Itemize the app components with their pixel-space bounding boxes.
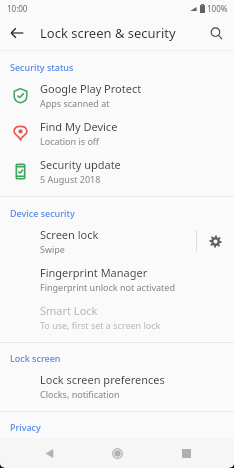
staticText: Find My Device [40, 119, 118, 134]
button[interactable]: Smart Lock [0, 298, 234, 336]
staticText: Lock screen [10, 352, 61, 364]
staticText: 5 August 2018 [40, 173, 101, 185]
staticText: 100% [207, 3, 228, 14]
button[interactable]: Back [29, 438, 69, 468]
button[interactable]: Search [203, 20, 229, 46]
staticText: Apps scanned at [40, 97, 110, 109]
staticText: Location is off [40, 135, 100, 147]
button[interactable]: Recent apps [166, 438, 206, 468]
staticText: Swipe [40, 243, 65, 255]
button[interactable]: Lock screen preferences [0, 367, 234, 405]
button[interactable]: Google Play Protect [0, 76, 234, 114]
staticText: Smart Lock [40, 303, 98, 318]
staticText: Fingerprint Manager [40, 265, 148, 280]
staticText: Lock screen & security [40, 24, 176, 42]
staticText: Security status [10, 61, 74, 73]
button[interactable]: Navigate up [4, 20, 30, 46]
button[interactable]: Screen lock settings [197, 222, 234, 260]
button[interactable]: Find My Device [0, 114, 234, 152]
button[interactable]: Fingerprint Manager [0, 260, 234, 298]
staticText: Security update [40, 157, 121, 172]
staticText: 10:00 [7, 3, 28, 14]
staticText: To use, first set a screen lock [40, 319, 161, 331]
staticText: Fingerprint unlock not activated [40, 281, 175, 293]
staticText: Device security [10, 207, 75, 219]
staticText: Lock screen preferences [40, 372, 165, 387]
button[interactable]: Home [97, 438, 137, 468]
staticText: Google Play Protect [40, 81, 142, 96]
button[interactable]: Screen lock [0, 222, 196, 260]
staticText: Clocks, notification [40, 388, 120, 400]
staticText: Privacy [10, 421, 41, 433]
staticText: Screen lock [40, 227, 99, 242]
button[interactable]: Security update [0, 152, 234, 190]
